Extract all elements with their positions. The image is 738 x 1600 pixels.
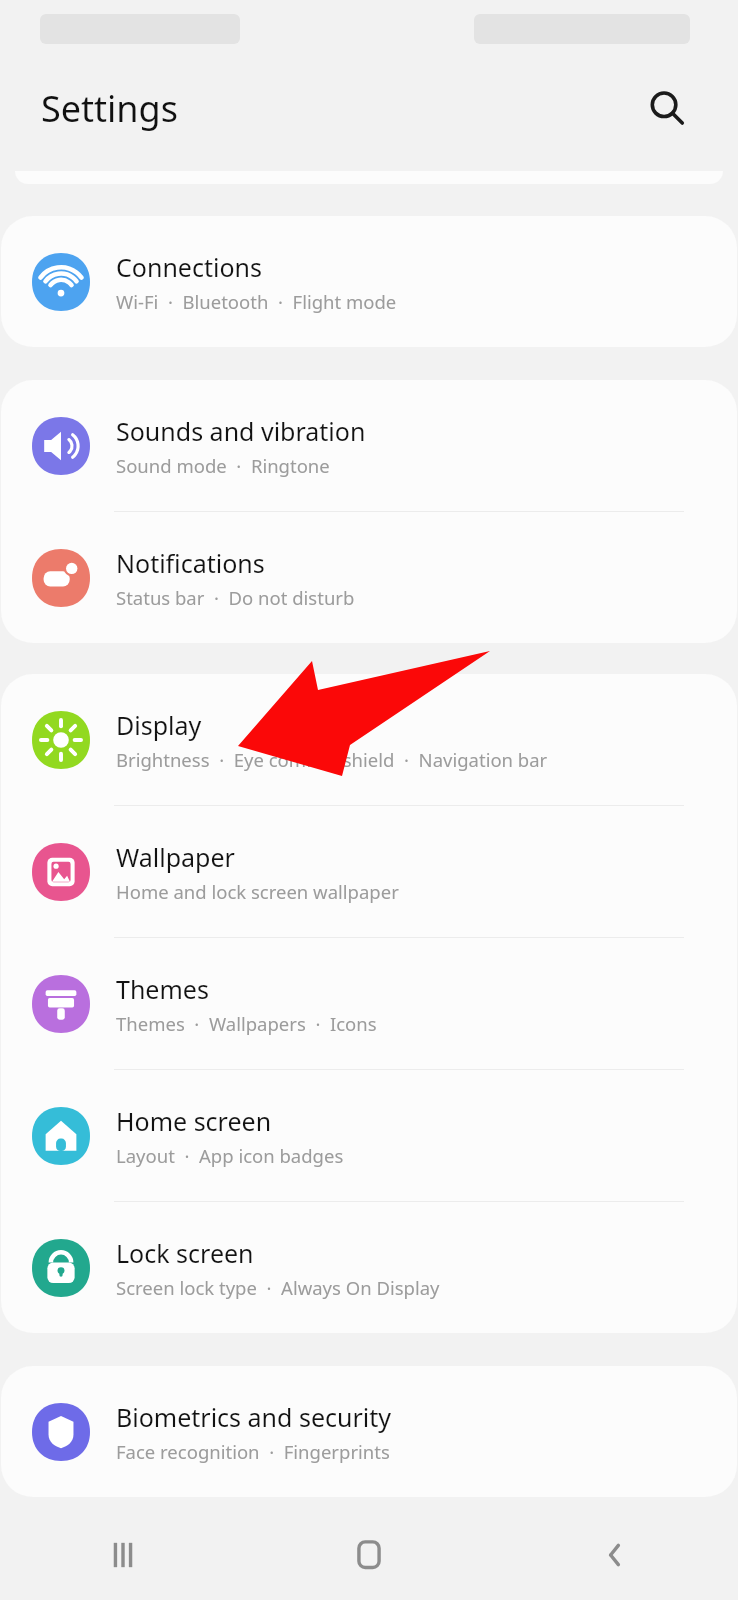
staticText: Display <box>116 708 202 742</box>
staticText: Sounds and vibration <box>116 414 366 448</box>
button[interactable]: Recents <box>0 1510 246 1600</box>
button[interactable]: Sounds and vibration <box>1 380 737 511</box>
staticText: Home screen <box>116 1104 272 1138</box>
button[interactable]: Back <box>492 1510 738 1600</box>
staticText: Settings <box>41 84 178 133</box>
staticText: Biometrics and security <box>116 1400 392 1434</box>
button[interactable]: Wallpaper <box>1 806 737 937</box>
staticText: Face recognition · Fingerprints <box>116 1439 390 1464</box>
button[interactable]: Notifications <box>1 512 737 643</box>
staticText: Layout · App icon badges <box>116 1143 344 1168</box>
staticText: Themes · Wallpapers · Icons <box>116 1011 377 1036</box>
staticText: Lock screen <box>116 1236 254 1270</box>
button[interactable]: Search <box>637 79 697 139</box>
staticText: Notifications <box>116 546 265 580</box>
staticText: Wallpaper <box>116 840 235 874</box>
staticText: Status bar · Do not disturb <box>116 585 355 610</box>
button[interactable]: Display <box>1 674 737 805</box>
staticText: Screen lock type · Always On Display <box>116 1275 440 1300</box>
staticText: Wi-Fi · Bluetooth · Flight mode <box>116 289 397 314</box>
staticText: Themes <box>116 972 209 1006</box>
button[interactable]: Connections <box>1 216 737 347</box>
button[interactable]: Home <box>246 1510 492 1600</box>
staticText: Home and lock screen wallpaper <box>116 879 399 904</box>
button[interactable]: Biometrics and security <box>1 1366 737 1497</box>
staticText: Sound mode · Ringtone <box>116 453 330 478</box>
staticText: Brightness · Eye comfort shield · Naviga… <box>116 747 548 772</box>
button[interactable]: Themes <box>1 938 737 1069</box>
button[interactable]: Home screen <box>1 1070 737 1201</box>
button[interactable]: Lock screen <box>1 1202 737 1333</box>
staticText: Connections <box>116 250 262 284</box>
